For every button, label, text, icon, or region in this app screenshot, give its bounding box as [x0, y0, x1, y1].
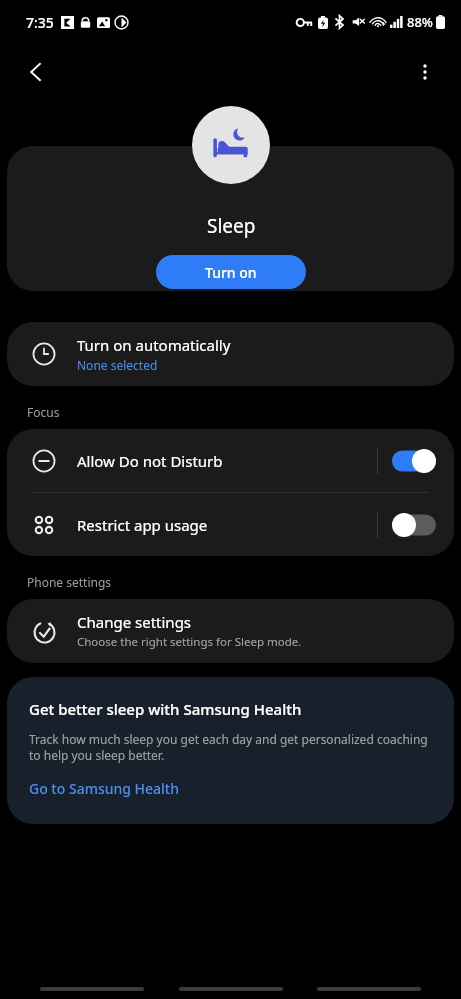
staticText: Restrict app usage: [77, 515, 377, 535]
staticText: Get better sleep with Samsung Health: [29, 699, 302, 719]
button[interactable]: Go to Samsung Health: [29, 779, 180, 798]
button[interactable]: On: [392, 449, 436, 473]
button[interactable]: Off: [392, 513, 436, 537]
button[interactable]: Restrict app usage: [7, 493, 454, 556]
button[interactable]: Turn on: [156, 255, 306, 289]
staticText: Turn on: [205, 263, 257, 282]
staticText: Choose the right settings for Sleep mode…: [77, 634, 302, 650]
button[interactable]: Change settings: [7, 599, 454, 663]
staticText: None selected: [77, 357, 158, 373]
staticText: Focus: [27, 404, 60, 420]
button[interactable]: Back: [12, 48, 60, 96]
staticText: Sleep: [207, 213, 256, 239]
staticText: Phone settings: [27, 574, 112, 590]
button[interactable]: Navigation: [40, 987, 144, 991]
staticText: Go to Samsung Health: [29, 779, 180, 798]
staticText: Allow Do not Disturb: [77, 451, 377, 471]
staticText: 7:35: [26, 13, 54, 32]
staticText: Turn on automatically: [77, 335, 231, 355]
staticText: 88%: [407, 13, 433, 31]
button[interactable]: Navigation: [179, 987, 283, 991]
button[interactable]: Navigation: [317, 987, 421, 991]
button[interactable]: More options: [401, 48, 449, 96]
button[interactable]: Allow Do not Disturb: [7, 429, 454, 492]
button[interactable]: Turn on automatically: [7, 322, 454, 386]
staticText: Track how much sleep you get each day an…: [29, 731, 432, 764]
staticText: Change settings: [77, 612, 192, 632]
